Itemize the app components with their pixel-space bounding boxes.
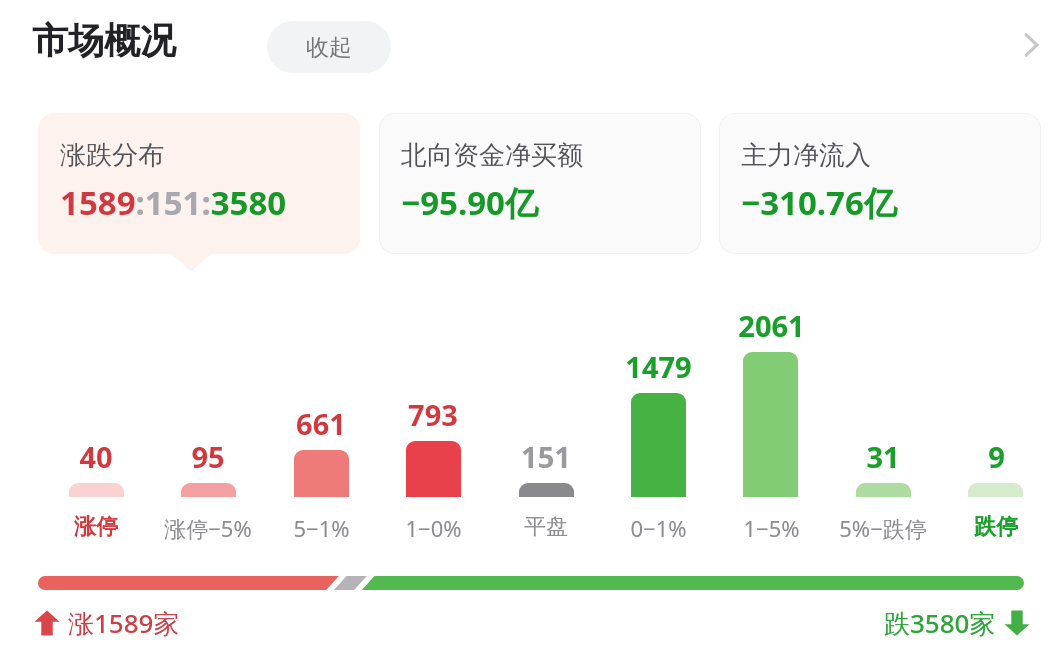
button[interactable]: [968, 483, 1023, 497]
staticText: 40: [79, 437, 113, 476]
button[interactable]: 主力净流入: [719, 113, 1041, 254]
staticText: 2061: [738, 306, 805, 345]
staticText: 793: [408, 395, 458, 434]
staticText: 收起: [306, 33, 352, 62]
button[interactable]: More: [1008, 22, 1054, 68]
button[interactable]: 北向资金净买额: [379, 113, 701, 254]
staticText: 661: [296, 404, 346, 443]
staticText: 5%−跌停: [839, 513, 927, 543]
staticText: 市场概况: [32, 18, 176, 63]
staticText: 0−1%: [630, 513, 687, 543]
staticText: 跌3580家: [884, 605, 996, 641]
button[interactable]: [69, 483, 124, 497]
button[interactable]: 市场概况: [30, 18, 178, 63]
button[interactable]: [856, 483, 911, 497]
staticText: 1−5%: [743, 513, 800, 543]
button[interactable]: [519, 483, 574, 497]
staticText: −310.76亿: [741, 180, 897, 225]
staticText: 9: [988, 437, 1005, 476]
button[interactable]: [294, 450, 349, 497]
staticText: 95: [191, 437, 225, 476]
button[interactable]: [743, 352, 798, 497]
button[interactable]: 跌3580家: [880, 603, 1034, 643]
button[interactable]: 收起: [267, 21, 391, 73]
staticText: 涨停: [74, 513, 118, 541]
button[interactable]: 涨1589家: [30, 603, 184, 643]
staticText: 主力净流入: [741, 139, 871, 172]
staticText: 涨停−5%: [164, 513, 252, 543]
button[interactable]: [406, 441, 461, 497]
staticText: 1−0%: [405, 513, 462, 543]
staticText: 涨1589家: [68, 605, 180, 641]
staticText: 1589:151:3580: [60, 180, 287, 225]
staticText: 5−1%: [293, 513, 350, 543]
staticText: 1479: [625, 347, 692, 386]
staticText: 31: [866, 437, 900, 476]
staticText: 151: [521, 437, 571, 476]
button[interactable]: [181, 483, 236, 497]
staticText: −95.90亿: [401, 180, 538, 225]
staticText: 涨跌分布: [60, 139, 164, 172]
button[interactable]: [38, 576, 1024, 590]
staticText: 北向资金净买额: [401, 139, 583, 172]
button[interactable]: 涨跌分布: [38, 113, 360, 254]
staticText: 跌停: [974, 513, 1018, 541]
staticText: 平盘: [524, 513, 568, 541]
button[interactable]: [631, 393, 686, 497]
